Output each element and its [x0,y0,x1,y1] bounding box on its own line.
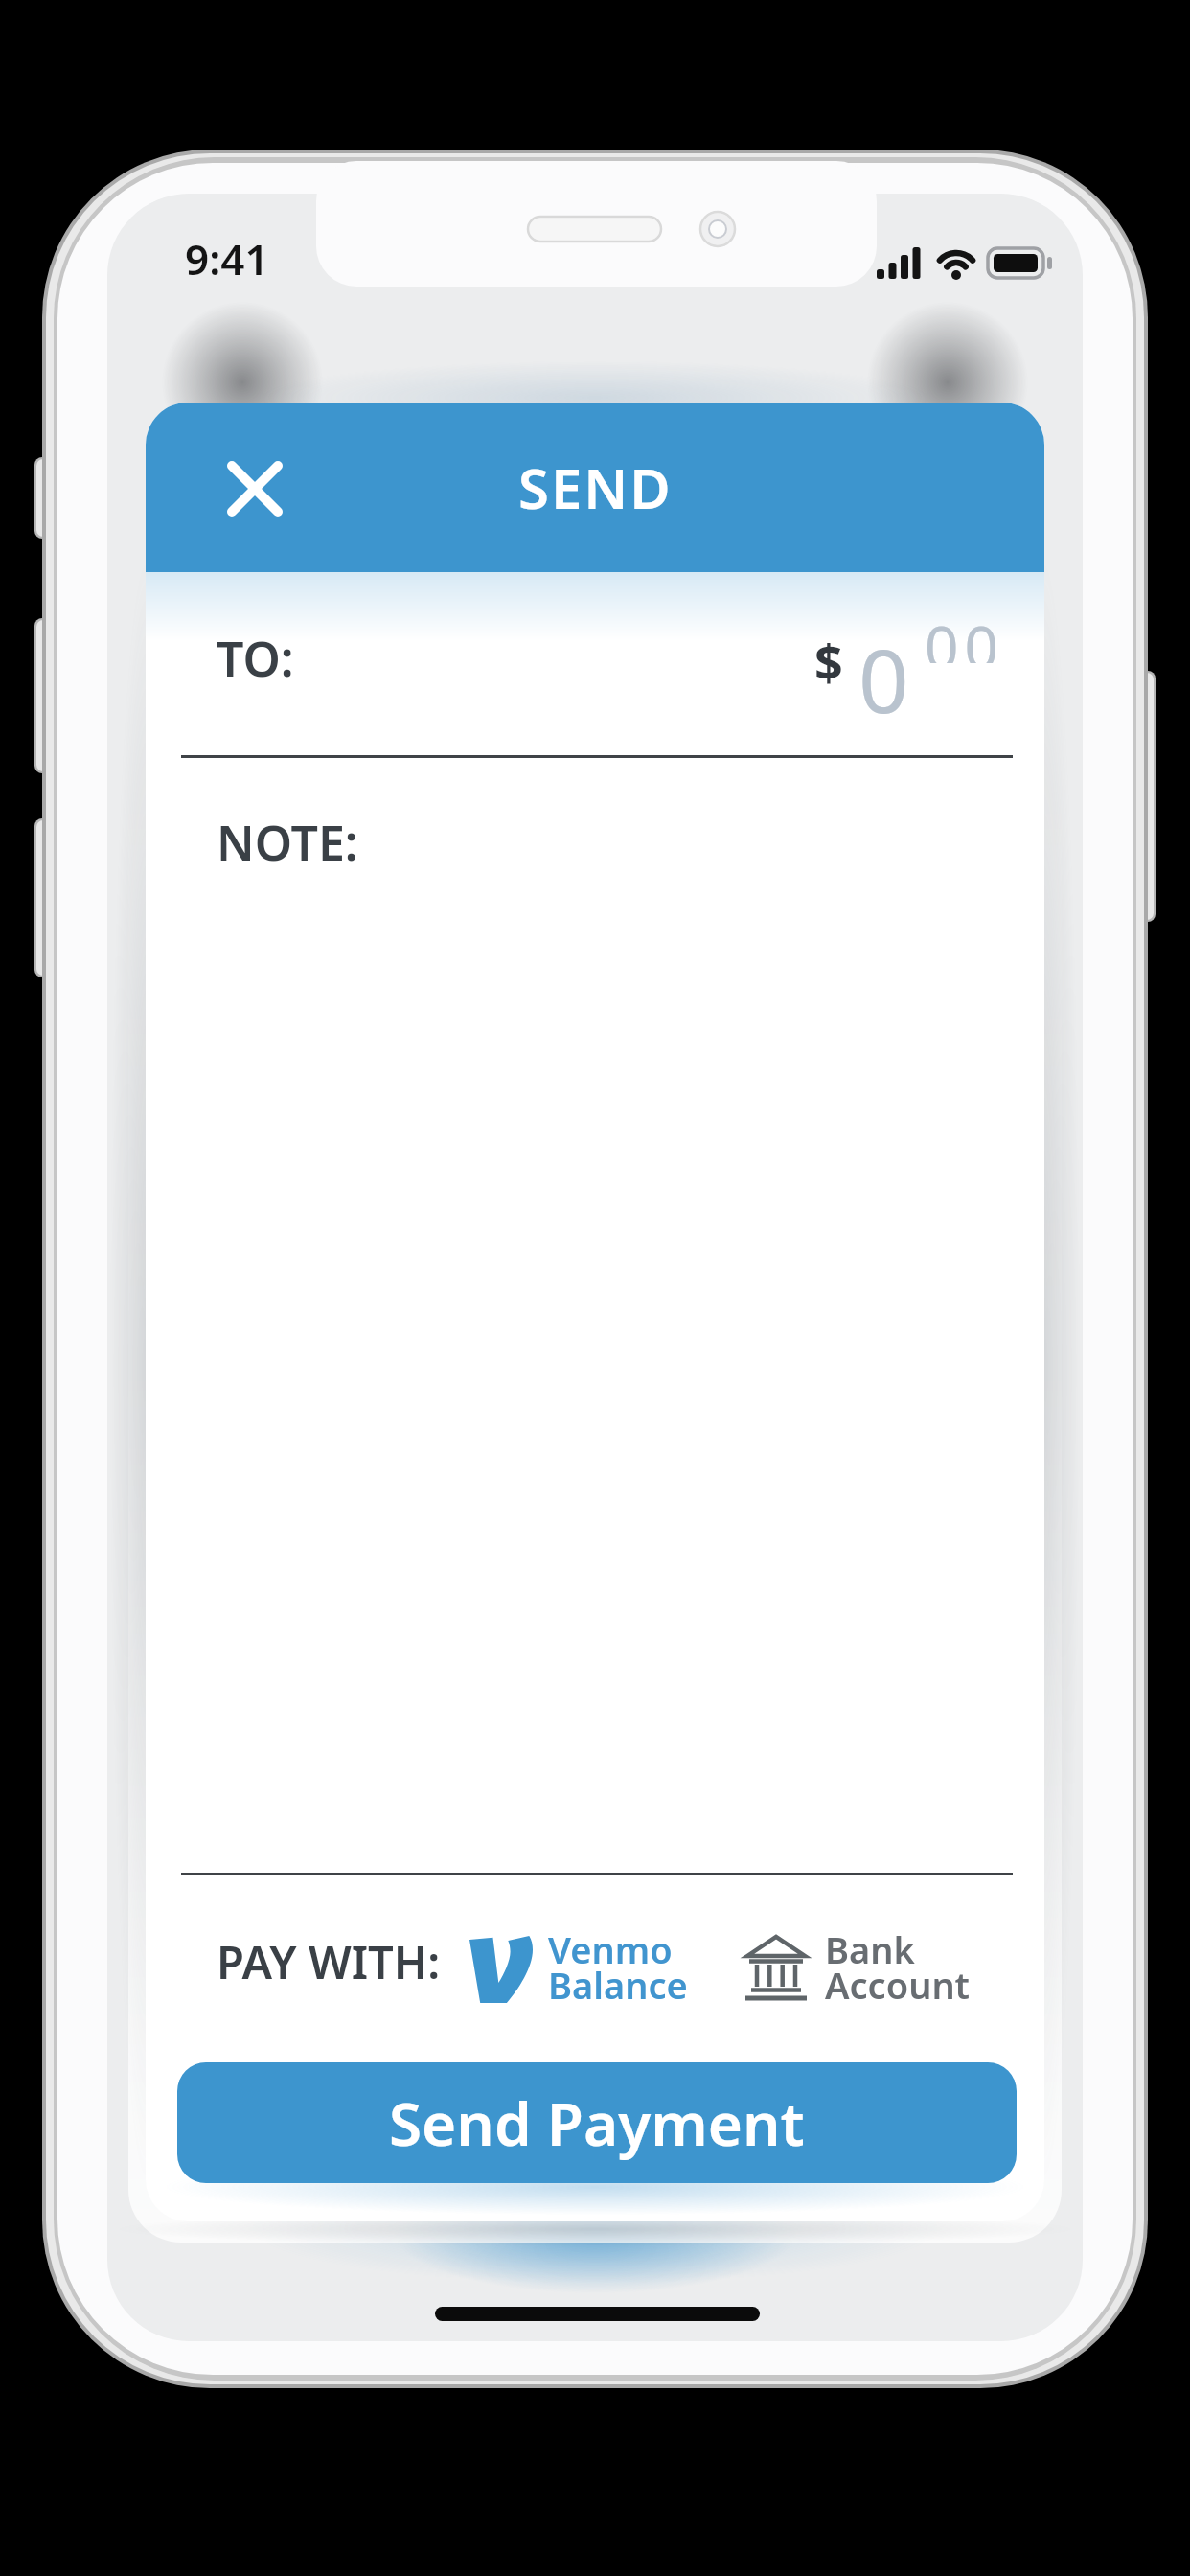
staticText: Balance [548,1960,688,2010]
staticText: Venmo [548,1924,673,1974]
staticText: PAY WITH: [217,1931,441,1992]
staticText: Send Payment [389,2082,805,2163]
button[interactable]: Bank [736,1920,1044,2012]
staticText: 00 [925,606,1004,663]
staticText: 0 [858,619,909,720]
button[interactable]: Send Payment [177,2062,1017,2183]
button[interactable] [209,443,301,535]
staticText: 9:41 [185,230,269,286]
staticText: SEND [518,449,673,525]
staticText: $ [814,628,843,685]
staticText: Account [825,1960,971,2010]
button[interactable]: Venmo [462,1920,845,2012]
staticText: Bank [825,1924,915,1974]
staticText: TO: [217,626,294,691]
staticText: NOTE: [217,810,358,875]
